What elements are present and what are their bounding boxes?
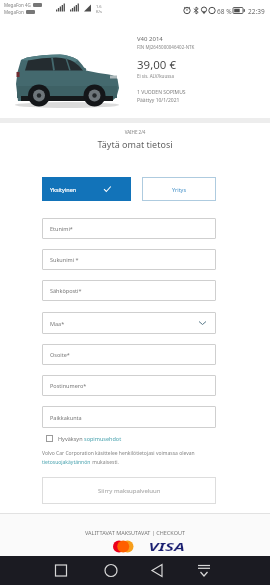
staticText: VALITTAVAT MAKSUTAVAT | CHECKOUT	[0, 529, 270, 536]
staticText: Ei sis. ALV/kuussa	[137, 73, 174, 79]
staticText: Etunimi*	[50, 225, 73, 232]
staticText: K/s	[96, 9, 102, 14]
staticText: Siirry maksupalveluun	[98, 487, 161, 495]
button[interactable]: tietosuojakäytännön	[42, 459, 91, 466]
button[interactable]: Postinumero*	[42, 375, 216, 396]
button[interactable]: Yksityinen	[42, 177, 131, 201]
button[interactable]: Sähköposti*	[42, 280, 216, 301]
staticText: Volvo Car Corporation käsittelee henkilö…	[42, 450, 195, 457]
staticText: sopimusehdot	[84, 435, 122, 442]
button[interactable]	[202, 556, 270, 585]
staticText: VAIHE 2/4	[0, 129, 270, 135]
button[interactable]: Yritys	[142, 177, 216, 201]
staticText: 22:39	[248, 7, 265, 16]
staticText: Paikkakunta	[50, 414, 82, 421]
staticText: 68 %	[217, 7, 232, 16]
button[interactable]: Paikkakunta	[42, 406, 216, 428]
staticText: MegaFon 4G	[4, 2, 31, 8]
button[interactable]: Hyväksyn	[46, 435, 122, 442]
staticText: Yritys	[172, 186, 187, 193]
button[interactable]	[0, 556, 67, 585]
staticText: MegaFon	[4, 9, 24, 15]
button[interactable]: Sukunimi *	[42, 249, 216, 270]
button[interactable]: Osoite*	[42, 344, 216, 365]
button[interactable]: Etunimi*	[42, 218, 216, 239]
staticText: Hyväksyn	[58, 435, 84, 442]
button[interactable]: Maa*	[42, 312, 216, 334]
staticText: Osoite*	[50, 351, 70, 358]
staticText: mukaisesti.	[91, 459, 119, 466]
staticText: 1.6	[96, 4, 102, 9]
button[interactable]	[67, 556, 134, 585]
staticText: FIN MJ2645000046402-NTK	[137, 44, 195, 50]
staticText: VISA	[148, 539, 186, 554]
button[interactable]: Siirry maksupalveluun	[42, 477, 216, 504]
staticText: Maa*	[50, 320, 65, 327]
button[interactable]	[134, 556, 202, 585]
staticText: Täytä omat tietosi	[0, 138, 270, 150]
staticText: Päättyy 10/1/2021	[137, 97, 180, 104]
staticText: 1 VUODEN SOPIMUS	[137, 89, 186, 96]
staticText: Sähköposti*	[50, 287, 82, 294]
staticText: V40 2014	[137, 35, 163, 43]
staticText: 39,00 €	[137, 57, 176, 73]
staticText: Sukunimi *	[50, 256, 79, 263]
staticText: Yksityinen	[50, 186, 77, 193]
staticText: Postinumero*	[50, 382, 87, 389]
